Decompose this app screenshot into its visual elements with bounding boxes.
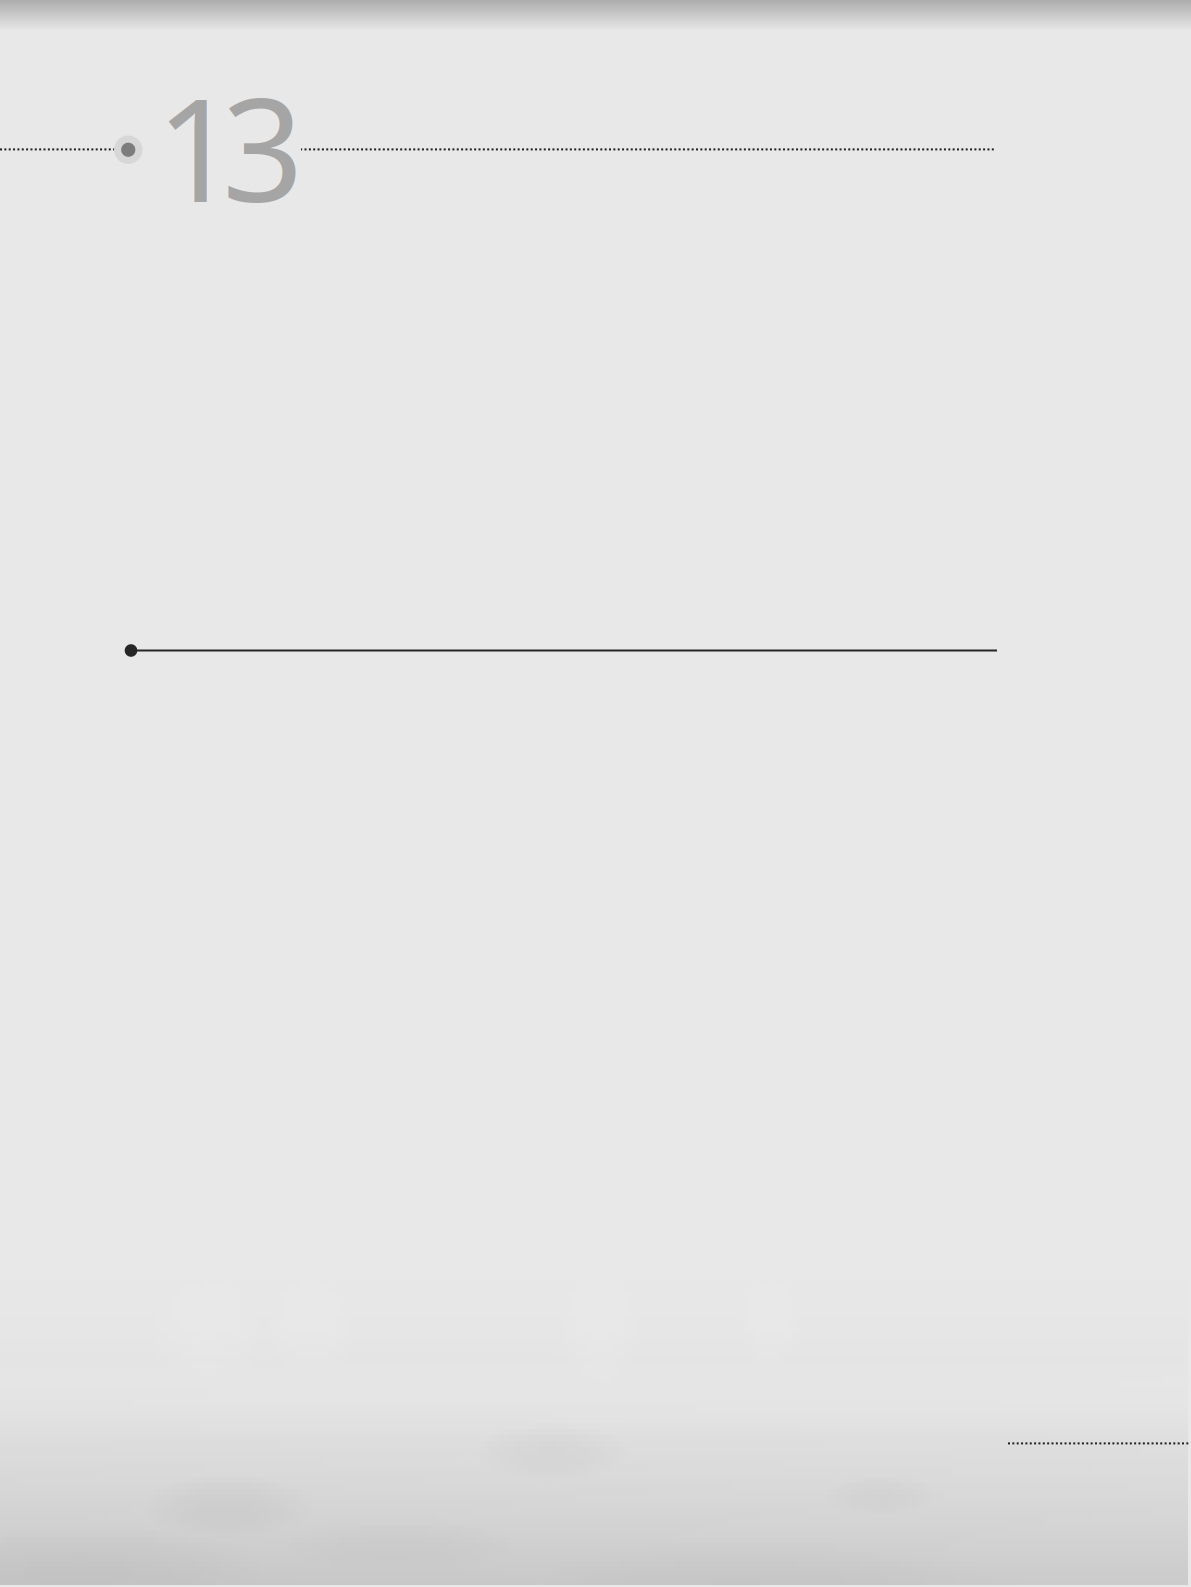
button[interactable]: Selected data point — [114, 135, 142, 164]
staticText: 13 — [156, 52, 304, 241]
button[interactable]: Range slider — [125, 644, 998, 657]
button[interactable]: 13 — [156, 52, 304, 241]
